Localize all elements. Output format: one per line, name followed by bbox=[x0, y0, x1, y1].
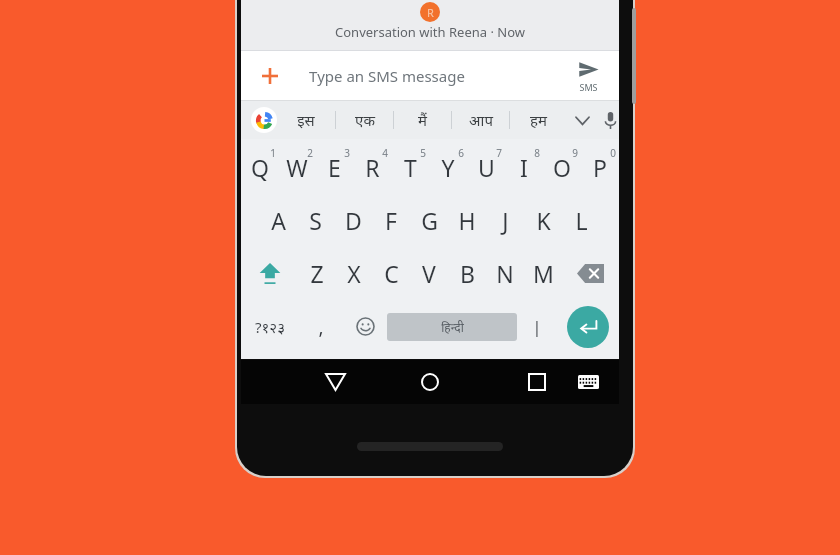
button[interactable]: More suggestions bbox=[567, 105, 597, 135]
button[interactable]: I bbox=[505, 141, 543, 194]
staticText: 4 bbox=[382, 146, 388, 160]
button[interactable]: Send SMS bbox=[563, 51, 613, 100]
staticText: G bbox=[421, 205, 438, 236]
staticText: 1 bbox=[270, 146, 276, 160]
staticText: J bbox=[502, 205, 509, 236]
staticText: Y bbox=[441, 152, 455, 183]
staticText: 5 bbox=[420, 146, 426, 160]
staticText: 7 bbox=[496, 146, 502, 160]
staticText: 0 bbox=[610, 146, 616, 160]
button[interactable]: S bbox=[297, 194, 334, 247]
button[interactable]: U bbox=[467, 141, 505, 194]
button[interactable]: Home bbox=[406, 360, 454, 404]
staticText: W bbox=[286, 152, 308, 183]
button[interactable]: X bbox=[335, 247, 372, 300]
staticText: 2 bbox=[307, 146, 313, 160]
staticText: E bbox=[328, 152, 341, 183]
button[interactable]: O bbox=[543, 141, 581, 194]
button[interactable]: Enter bbox=[567, 306, 609, 348]
staticText: 8 bbox=[534, 146, 540, 160]
staticText: C bbox=[384, 258, 399, 289]
staticText: A bbox=[271, 205, 286, 236]
button[interactable]: Google bbox=[251, 107, 277, 133]
staticText: B bbox=[460, 258, 475, 289]
staticText: I bbox=[520, 152, 528, 183]
button[interactable]: ?१२३ bbox=[241, 300, 299, 353]
staticText: आप bbox=[469, 110, 493, 130]
button[interactable]: मैं bbox=[394, 101, 451, 139]
staticText: K bbox=[536, 205, 551, 236]
button[interactable]: T bbox=[391, 141, 429, 194]
button[interactable]: आप bbox=[452, 101, 509, 139]
staticText: Z bbox=[310, 258, 324, 289]
staticText: H bbox=[458, 205, 476, 236]
button[interactable]: | bbox=[517, 300, 557, 353]
staticText: V bbox=[422, 258, 436, 289]
staticText: T bbox=[404, 152, 417, 183]
button[interactable]: P bbox=[581, 141, 619, 194]
button[interactable]: L bbox=[562, 194, 600, 247]
staticText: Conversation with Reena · Now bbox=[335, 23, 525, 41]
staticText: R bbox=[365, 152, 380, 183]
button[interactable]: Q bbox=[241, 141, 278, 194]
button[interactable]: हिन्दी bbox=[387, 313, 517, 341]
staticText: F bbox=[385, 205, 397, 236]
button[interactable]: G bbox=[410, 194, 448, 247]
button[interactable]: Add attachment bbox=[241, 51, 619, 100]
staticText: P bbox=[593, 152, 607, 183]
staticText: N bbox=[496, 258, 514, 289]
button[interactable]: F bbox=[372, 194, 410, 247]
staticText: S bbox=[309, 205, 322, 236]
staticText: X bbox=[347, 258, 361, 289]
button[interactable]: एक bbox=[336, 101, 393, 139]
button[interactable]: B bbox=[448, 247, 486, 300]
staticText: 6 bbox=[458, 146, 464, 160]
staticText: M bbox=[533, 258, 554, 289]
button[interactable]: , bbox=[299, 300, 343, 353]
button[interactable]: M bbox=[524, 247, 562, 300]
button[interactable]: J bbox=[486, 194, 524, 247]
staticText: हम bbox=[530, 110, 547, 130]
button[interactable]: Add attachment bbox=[257, 63, 283, 89]
staticText: 3 bbox=[344, 146, 350, 160]
staticText: L bbox=[575, 205, 588, 236]
staticText: मैं bbox=[418, 110, 427, 130]
staticText: , bbox=[318, 314, 324, 340]
button[interactable]: Voice input bbox=[601, 104, 619, 136]
button[interactable]: E bbox=[315, 141, 353, 194]
staticText: SMS bbox=[579, 81, 598, 93]
button[interactable]: Z bbox=[298, 247, 335, 300]
staticText: हिन्दी bbox=[441, 319, 464, 335]
button[interactable]: K bbox=[524, 194, 562, 247]
button[interactable]: Y bbox=[429, 141, 467, 194]
button[interactable]: Shift bbox=[241, 247, 298, 300]
staticText: D bbox=[345, 205, 362, 236]
button[interactable]: Back bbox=[311, 360, 359, 404]
button[interactable]: हम bbox=[510, 101, 567, 139]
staticText: R bbox=[427, 5, 434, 20]
staticText: इस bbox=[297, 110, 315, 130]
button[interactable]: D bbox=[334, 194, 372, 247]
staticText: U bbox=[478, 152, 495, 183]
staticText: O bbox=[553, 152, 571, 183]
button[interactable]: Emoji bbox=[343, 300, 387, 353]
button[interactable]: Backspace bbox=[562, 247, 619, 300]
staticText: एक bbox=[355, 110, 375, 130]
button[interactable]: N bbox=[486, 247, 524, 300]
button[interactable]: W bbox=[278, 141, 315, 194]
staticText: ?१२३ bbox=[255, 317, 285, 337]
button[interactable]: R bbox=[353, 141, 391, 194]
button[interactable]: C bbox=[372, 247, 410, 300]
button[interactable]: V bbox=[410, 247, 448, 300]
button[interactable]: A bbox=[260, 194, 297, 247]
staticText: Q bbox=[251, 152, 269, 183]
button[interactable]: इस bbox=[277, 101, 335, 139]
staticText: | bbox=[532, 315, 542, 338]
button[interactable]: H bbox=[448, 194, 486, 247]
button[interactable]: Switch keyboard bbox=[567, 360, 609, 404]
staticText: 9 bbox=[572, 146, 578, 160]
button[interactable]: Recent apps bbox=[513, 360, 561, 404]
staticText: Type an SMS message bbox=[309, 66, 465, 86]
